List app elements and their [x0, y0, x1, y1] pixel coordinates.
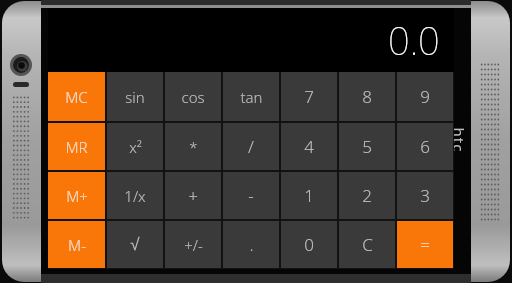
staticText: .	[249, 233, 254, 256]
button[interactable]: cos	[165, 72, 221, 121]
button[interactable]: /	[223, 123, 279, 170]
button[interactable]: sin	[107, 72, 163, 121]
button[interactable]: 2	[339, 172, 395, 219]
button[interactable]: MC	[48, 72, 105, 121]
button[interactable]: +	[165, 172, 221, 219]
staticText: M+	[66, 186, 88, 206]
staticText: 0.0	[388, 14, 440, 66]
button[interactable]: 9	[397, 72, 453, 121]
button[interactable]: M-	[48, 221, 105, 268]
button[interactable]: C	[339, 221, 395, 268]
staticText: MR	[65, 137, 88, 157]
button[interactable]: 1	[281, 172, 337, 219]
button[interactable]: 5	[339, 123, 395, 170]
staticText: 5	[362, 135, 372, 158]
button[interactable]: =	[397, 221, 453, 268]
staticText: x²	[129, 137, 142, 157]
button[interactable]: -	[223, 172, 279, 219]
button[interactable]: +/-	[165, 221, 221, 268]
staticText: 7	[304, 85, 314, 108]
staticText: 9	[420, 85, 430, 108]
button[interactable]: 4	[281, 123, 337, 170]
button[interactable]: x²	[107, 123, 163, 170]
staticText: 2	[362, 184, 372, 207]
button[interactable]: *	[165, 123, 221, 170]
staticText: √	[130, 235, 140, 254]
staticText: 8	[362, 85, 372, 108]
staticText: 3	[420, 184, 430, 207]
button[interactable]: M+	[48, 172, 105, 219]
staticText: 4	[304, 135, 314, 158]
staticText: htc	[448, 127, 468, 152]
staticText: +	[188, 184, 198, 207]
button[interactable]: 0	[281, 221, 337, 268]
button[interactable]: MR	[48, 123, 105, 170]
staticText: C	[362, 233, 373, 256]
staticText: /	[248, 135, 254, 158]
staticText: =	[420, 233, 430, 256]
staticText: MC	[65, 87, 88, 107]
staticText: 1	[304, 184, 314, 207]
button[interactable]: 3	[397, 172, 453, 219]
button[interactable]: .	[223, 221, 279, 268]
button[interactable]: tan	[223, 72, 279, 121]
staticText: M-	[68, 235, 86, 255]
staticText: tan	[240, 87, 263, 107]
button[interactable]: 7	[281, 72, 337, 121]
button[interactable]: 8	[339, 72, 395, 121]
staticText: cos	[181, 87, 205, 107]
staticText: 6	[420, 135, 430, 158]
button[interactable]: 6	[397, 123, 453, 170]
staticText: *	[189, 137, 198, 157]
staticText: -	[248, 184, 254, 207]
button[interactable]: √	[107, 221, 163, 268]
staticText: 0	[304, 233, 314, 256]
staticText: +/-	[184, 235, 203, 255]
staticText: 1/x	[124, 186, 146, 206]
button[interactable]: 1/x	[107, 172, 163, 219]
staticText: sin	[125, 87, 145, 107]
